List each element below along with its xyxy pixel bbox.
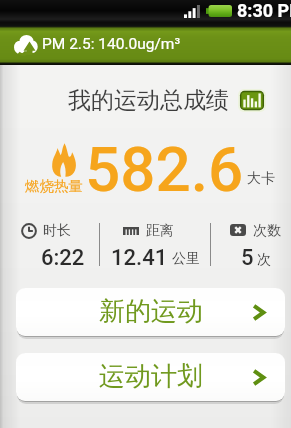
staticText: 时长: [43, 222, 71, 240]
staticText: 燃烧热量: [25, 177, 83, 195]
other: 新的运动: [253, 305, 264, 320]
staticText: 新的运动: [99, 295, 203, 328]
staticText: 8:30 PM: [237, 0, 291, 21]
staticText: PM 2.5: 140.0ug/m³: [42, 35, 181, 53]
button[interactable]: 新的运动: [16, 288, 285, 340]
staticText: 582.6: [85, 133, 244, 206]
staticText: 运动计划: [99, 360, 203, 393]
staticText: 我的运动总成绩: [68, 86, 229, 115]
staticText: 距离: [146, 222, 174, 240]
staticText: 5: [241, 245, 254, 271]
staticText: 6:22: [41, 245, 85, 271]
other: 运动计划: [253, 370, 264, 385]
staticText: 大卡: [247, 170, 275, 188]
staticText: 次: [257, 251, 271, 269]
button[interactable]: 运动计划: [16, 353, 285, 405]
staticText: 12.41: [111, 245, 168, 271]
staticText: 公里: [172, 250, 200, 268]
staticText: 次数: [253, 222, 281, 240]
